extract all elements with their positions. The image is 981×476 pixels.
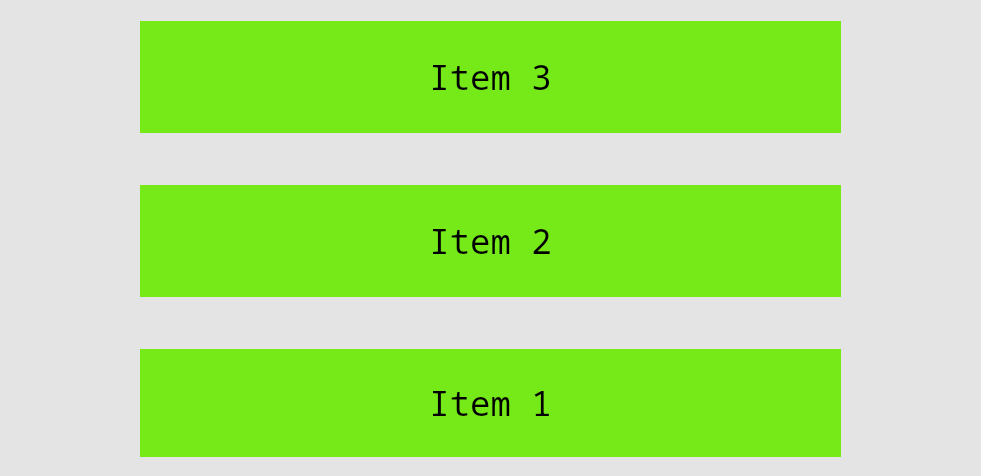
button[interactable]: Item 2 — [140, 185, 841, 297]
staticText: Item 2 — [429, 218, 552, 264]
button[interactable]: Item 1 — [140, 349, 841, 457]
button[interactable]: Item 3 — [140, 21, 841, 133]
staticText: Item 3 — [429, 54, 552, 100]
staticText: Item 1 — [429, 380, 552, 426]
